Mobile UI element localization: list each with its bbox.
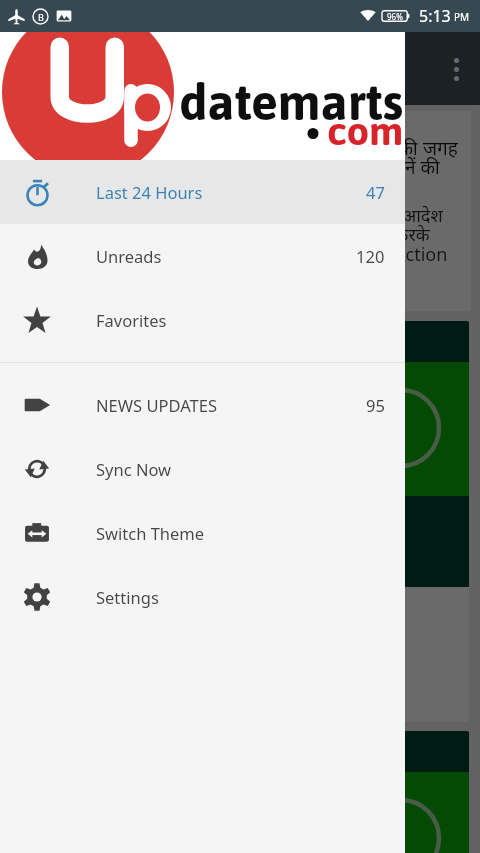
staticText: 95 [366, 394, 385, 416]
button[interactable]: Favorites [0, 288, 405, 352]
staticText: Settings [96, 586, 159, 608]
staticText: सुप्रीम कोर्ट के बड़े ऐतिहासिक फैसले के … [26, 135, 458, 179]
other: Sync now [24, 456, 50, 482]
staticText: Sync Now [96, 458, 172, 480]
staticText: Unreads [96, 245, 162, 267]
button[interactable]: Unreads [0, 224, 405, 288]
staticText: com [327, 108, 404, 154]
button[interactable]: Sync now [0, 437, 405, 501]
button[interactable]: Last 24 hours [0, 160, 405, 224]
other: Favorites [23, 306, 51, 334]
staticText: नई दिल्ली: सुप्रीम कोर्ट ने सुनाया बेहद … [26, 203, 448, 267]
staticText: 47 [366, 181, 385, 203]
staticText: NEWS UPDATES [96, 394, 217, 416]
staticText: Last 24 Hours [96, 181, 203, 203]
button[interactable]: Settings [0, 565, 405, 629]
other: News updates [23, 391, 51, 419]
staticText: 96% [387, 11, 403, 22]
button[interactable]: ...स पढ़ें [10, 321, 469, 722]
button[interactable]: सुप्रीम कोर्ट के बड़े ऐतिहासिक फैसले के … [10, 111, 471, 311]
staticText: B [38, 11, 44, 23]
button[interactable]: More options [454, 58, 459, 81]
staticText: PM [454, 10, 470, 24]
staticText: 120 [356, 245, 385, 267]
staticText: datemarts [179, 73, 404, 130]
button[interactable]: News updates [0, 373, 405, 437]
staticText: 5:13 [419, 5, 451, 27]
staticText: Favorites [96, 309, 167, 331]
other: Unreads [25, 244, 50, 269]
button[interactable]: Switch theme [0, 501, 405, 565]
button[interactable] [10, 731, 469, 853]
staticText: Switch Theme [96, 522, 205, 544]
other: Switch theme [24, 520, 50, 546]
button[interactable]: Updatemarts.com [0, 32, 405, 160]
other: Settings [23, 583, 51, 611]
other: Last 24 hours [24, 179, 51, 206]
